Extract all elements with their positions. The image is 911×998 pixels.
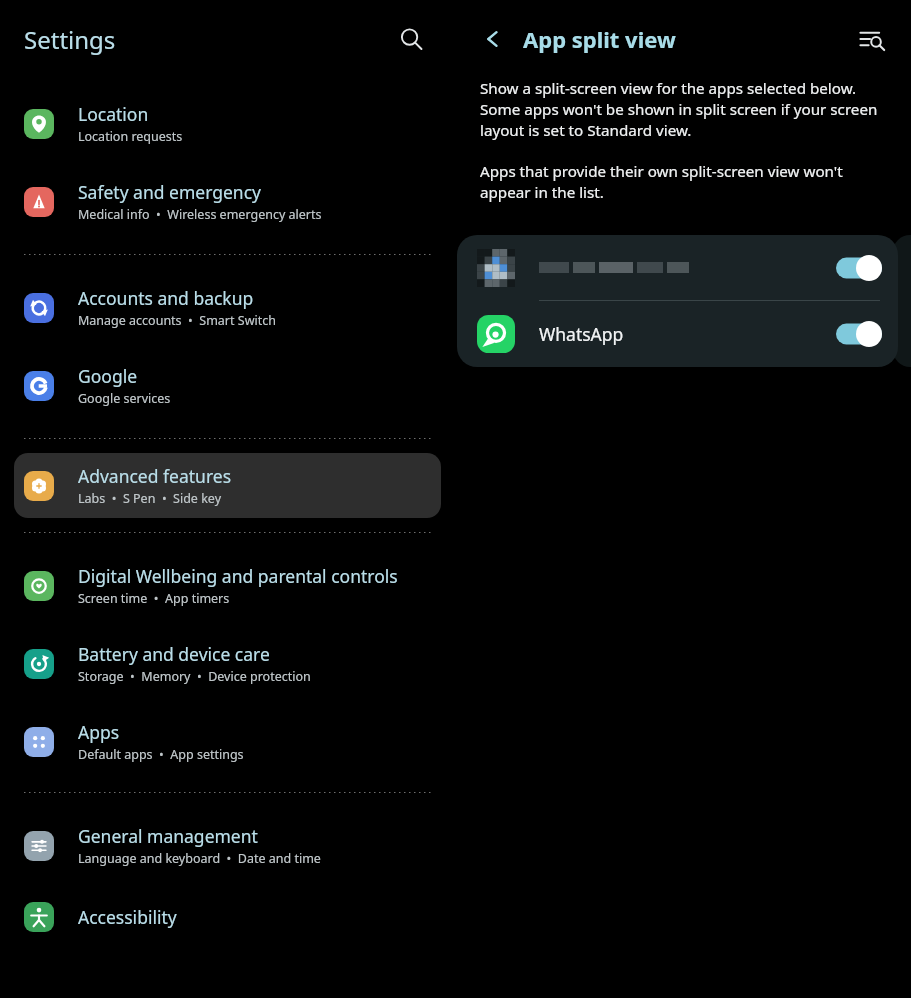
button[interactable]: WhatsApp [457, 301, 898, 367]
staticText: Manage accounts • Smart Switch [78, 312, 276, 329]
staticText: Google services [78, 390, 171, 407]
button[interactable]: Apps [14, 709, 441, 774]
button[interactable]: General management [14, 813, 441, 878]
staticText: Apps [78, 720, 120, 744]
button[interactable]: Toggle on [457, 235, 898, 300]
staticText: Accounts and backup [78, 286, 254, 310]
button[interactable]: Toggle on [836, 255, 882, 281]
staticText: Advanced features [78, 464, 232, 488]
staticText: Google [78, 364, 138, 388]
staticText: Battery and device care [78, 642, 270, 666]
button[interactable]: Toggle on [836, 321, 882, 347]
button[interactable]: Back [471, 17, 515, 61]
staticText: Show a split-screen view for the apps se… [480, 78, 891, 141]
staticText: Language and keyboard • Date and time [78, 850, 321, 867]
button[interactable]: Advanced features [14, 453, 441, 518]
staticText: Location requests [78, 128, 183, 145]
button[interactable]: Google [14, 353, 441, 418]
button[interactable]: Accounts and backup [14, 275, 441, 340]
button[interactable]: Search in list [849, 17, 893, 61]
staticText: Screen time • App timers [78, 590, 230, 607]
staticText: Location [78, 102, 149, 126]
staticText: Digital Wellbeing and parental controls [78, 564, 398, 588]
button[interactable]: Safety and emergency [14, 169, 441, 234]
staticText: WhatsApp [539, 322, 624, 346]
staticText: Safety and emergency [78, 180, 261, 204]
button[interactable]: Search [389, 17, 433, 61]
staticText: Storage • Memory • Device protection [78, 668, 311, 685]
staticText: Medical info • Wireless emergency alerts [78, 206, 322, 223]
button[interactable]: Digital Wellbeing and parental controls [14, 553, 441, 618]
staticText: Labs • S Pen • Side key [78, 490, 222, 507]
button[interactable]: Battery and device care [14, 631, 441, 696]
staticText: Default apps • App settings [78, 746, 244, 763]
staticText: Settings [24, 23, 116, 56]
button[interactable]: Accessibility [14, 891, 441, 943]
staticText: App split view [523, 24, 676, 54]
button[interactable]: Location [14, 91, 441, 156]
staticText: Accessibility [78, 905, 177, 929]
staticText: General management [78, 824, 258, 848]
staticText: Apps that provide their own split-screen… [480, 161, 891, 203]
